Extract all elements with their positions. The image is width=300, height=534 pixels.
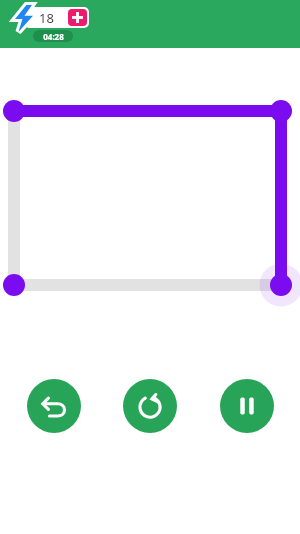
staticText: 18 (39, 9, 54, 27)
staticText: 04:28 (43, 31, 64, 42)
button[interactable]: Restart (123, 379, 177, 433)
button[interactable]: Pause (220, 379, 274, 433)
button[interactable]: 18 (24, 7, 89, 28)
button[interactable]: Undo (27, 379, 81, 433)
button[interactable]: Add energy (68, 9, 87, 26)
